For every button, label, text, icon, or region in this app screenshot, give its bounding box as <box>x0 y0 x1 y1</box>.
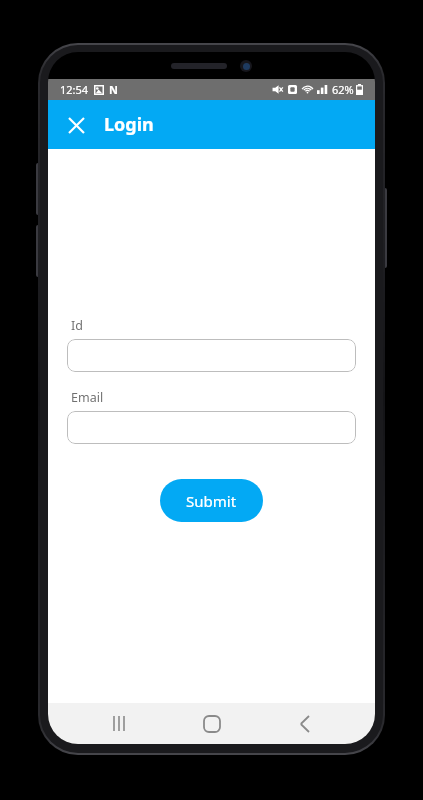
button[interactable] <box>67 411 356 444</box>
button[interactable]: Back <box>282 703 326 744</box>
staticText: N <box>109 82 118 97</box>
staticText: Login <box>104 112 154 137</box>
button[interactable]: Recent apps <box>97 703 141 744</box>
staticText: Submit <box>186 491 237 511</box>
button[interactable]: Submit <box>160 479 263 522</box>
staticText: 62% <box>332 82 354 97</box>
staticText: Id <box>71 317 83 334</box>
button[interactable]: Home <box>190 703 234 744</box>
staticText: 12:54 <box>60 82 89 97</box>
button[interactable]: Close <box>56 105 96 145</box>
staticText: Email <box>71 389 104 406</box>
button[interactable] <box>67 339 356 372</box>
